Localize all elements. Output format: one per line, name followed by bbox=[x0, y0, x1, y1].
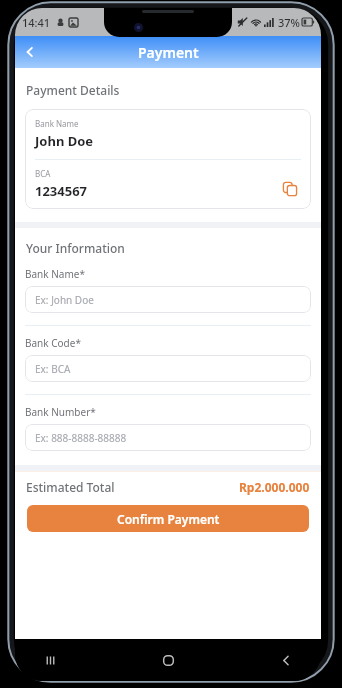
staticText: 14:41 bbox=[22, 15, 51, 30]
button[interactable]: Back bbox=[15, 37, 45, 67]
staticText: Ex: John Doe bbox=[35, 293, 94, 307]
button[interactable]: Confirm Payment bbox=[27, 505, 309, 532]
staticText: Bank Name* bbox=[25, 267, 85, 281]
staticText: Bank Number* bbox=[25, 405, 96, 419]
button[interactable]: Copy account number bbox=[279, 178, 301, 200]
staticText: Payment Details bbox=[26, 82, 120, 98]
button[interactable]: Ex: 888-8888-88888 bbox=[25, 424, 311, 451]
staticText: Ex: 888-8888-88888 bbox=[35, 431, 127, 445]
staticText: Bank Name bbox=[35, 118, 79, 129]
staticText: Bank Code* bbox=[25, 336, 81, 350]
staticText: Confirm Payment bbox=[117, 511, 220, 527]
button[interactable]: Back bbox=[269, 643, 303, 677]
staticText: Your Information bbox=[26, 240, 125, 256]
button[interactable]: Recent apps bbox=[33, 643, 67, 677]
staticText: Payment bbox=[138, 43, 199, 62]
button[interactable]: Home bbox=[151, 643, 185, 677]
staticText: John Doe bbox=[35, 132, 94, 150]
staticText: 1234567 bbox=[35, 182, 88, 200]
staticText: BCA bbox=[35, 168, 51, 179]
staticText: Rp2.000.000 bbox=[239, 479, 310, 495]
button[interactable]: Ex: BCA bbox=[25, 355, 311, 382]
button[interactable]: Ex: John Doe bbox=[25, 286, 311, 313]
staticText: 37% bbox=[278, 15, 300, 30]
staticText: Estimated Total bbox=[26, 479, 115, 495]
staticText: Ex: BCA bbox=[35, 362, 71, 376]
